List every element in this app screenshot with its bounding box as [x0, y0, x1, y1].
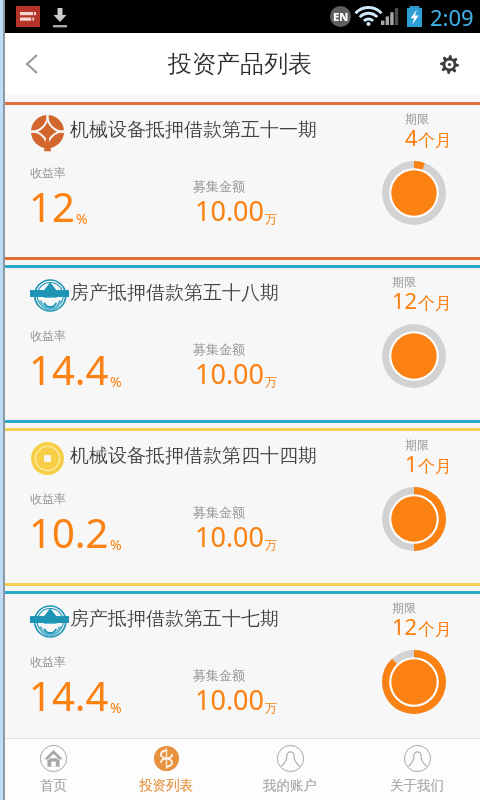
- staticText: 10.00: [195, 355, 265, 392]
- button[interactable]: 投资列表: [121, 739, 211, 800]
- staticText: 10.00: [195, 192, 265, 229]
- staticText: %: [76, 209, 88, 228]
- staticText: EN: [333, 9, 349, 24]
- staticText: 期限: [405, 437, 429, 452]
- staticText: 12: [29, 179, 75, 233]
- staticText: 房产抵押借款第五十七期: [70, 607, 279, 631]
- staticText: 首页: [40, 777, 67, 794]
- staticText: 个月: [418, 130, 452, 151]
- button[interactable]: 机械设备抵押借款第五十一期: [0, 105, 480, 257]
- button[interactable]: 房产抵押借款第五十八期: [0, 268, 480, 420]
- staticText: 期限: [392, 600, 416, 615]
- staticText: 万: [265, 374, 277, 389]
- staticText: 房产抵押借款第五十八期: [70, 281, 279, 305]
- staticText: 1: [405, 448, 418, 478]
- staticText: 期限: [405, 111, 429, 126]
- button[interactable]: Settings: [427, 42, 471, 86]
- staticText: 万: [265, 211, 277, 226]
- staticText: 收益率: [30, 328, 66, 343]
- button[interactable]: 房产抵押借款第五十七期: [0, 594, 480, 738]
- staticText: 收益率: [30, 165, 66, 180]
- staticText: 投资列表: [139, 777, 193, 794]
- button[interactable]: 首页: [8, 739, 98, 800]
- staticText: 收益率: [30, 654, 66, 669]
- staticText: 我的账户: [263, 777, 317, 794]
- staticText: 14.4: [29, 668, 109, 722]
- staticText: 万: [265, 537, 277, 552]
- staticText: 募集金额: [193, 178, 245, 194]
- staticText: 关于我们: [390, 777, 444, 794]
- staticText: 4: [405, 122, 418, 152]
- staticText: %: [110, 372, 122, 391]
- staticText: 募集金额: [193, 667, 245, 683]
- staticText: 个月: [418, 619, 452, 640]
- staticText: 机械设备抵押借款第四十四期: [70, 444, 317, 468]
- staticText: 投资产品列表: [168, 49, 312, 79]
- staticText: 收益率: [30, 491, 66, 506]
- staticText: 机械设备抵押借款第五十一期: [70, 118, 317, 142]
- staticText: 2:09: [430, 2, 474, 32]
- staticText: 募集金额: [193, 504, 245, 520]
- staticText: 募集金额: [193, 341, 245, 357]
- staticText: 万: [265, 700, 277, 715]
- button[interactable]: Back: [6, 38, 58, 90]
- staticText: %: [110, 535, 122, 554]
- staticText: 个月: [418, 456, 452, 477]
- staticText: 10.00: [195, 681, 265, 718]
- button[interactable]: 我的账户: [245, 739, 335, 800]
- staticText: 10.2: [29, 505, 109, 559]
- staticText: 14.4: [29, 342, 109, 396]
- button[interactable]: 关于我们: [372, 739, 462, 800]
- staticText: 12: [392, 611, 418, 641]
- staticText: %: [110, 698, 122, 717]
- staticText: 10.00: [195, 518, 265, 555]
- staticText: 12: [392, 285, 418, 315]
- button[interactable]: 机械设备抵押借款第四十四期: [0, 431, 480, 583]
- staticText: 期限: [392, 274, 416, 289]
- staticText: 个月: [418, 293, 452, 314]
